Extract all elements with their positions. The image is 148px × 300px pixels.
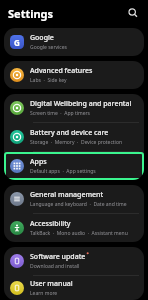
button[interactable]: Advanced features bbox=[4, 61, 144, 89]
staticText: Default apps · App settings bbox=[30, 168, 96, 175]
staticText: Accessibility bbox=[30, 219, 71, 229]
button[interactable]: Software update bbox=[4, 247, 144, 275]
staticText: General management bbox=[30, 190, 104, 200]
staticText: Software update bbox=[30, 252, 86, 262]
staticText: TalkBack · Mono audio · Assistant menu bbox=[30, 230, 128, 237]
staticText: Google services bbox=[30, 44, 67, 51]
staticText: Labs · Side key bbox=[30, 77, 67, 84]
staticText: Digital Wellbeing and parental controls bbox=[30, 99, 139, 109]
button[interactable]: G bbox=[4, 28, 144, 56]
staticText: User manual bbox=[30, 279, 73, 289]
button[interactable]: Digital Wellbeing and parental controls bbox=[4, 94, 144, 122]
button[interactable]: Apps bbox=[4, 152, 144, 180]
staticText: Battery and device care bbox=[30, 128, 109, 138]
staticText: Screen time · App timers bbox=[30, 110, 90, 117]
button[interactable]: Search bbox=[124, 4, 142, 22]
staticText: Google bbox=[30, 33, 54, 43]
button[interactable]: Accessibility bbox=[4, 214, 144, 242]
button[interactable]: General management bbox=[4, 185, 144, 213]
button[interactable]: Battery and device care bbox=[4, 123, 144, 151]
button[interactable]: User manual bbox=[4, 276, 144, 300]
staticText: Apps bbox=[30, 157, 47, 167]
staticText: G bbox=[14, 37, 20, 48]
staticText: Settings bbox=[8, 6, 54, 21]
staticText: Storage · Memory · Device protection bbox=[30, 139, 123, 146]
staticText: Advanced features bbox=[30, 66, 93, 76]
staticText: Download and install bbox=[30, 263, 80, 270]
staticText: Language and keyboard · Date and time bbox=[30, 201, 127, 208]
staticText: Learn more bbox=[30, 290, 58, 297]
